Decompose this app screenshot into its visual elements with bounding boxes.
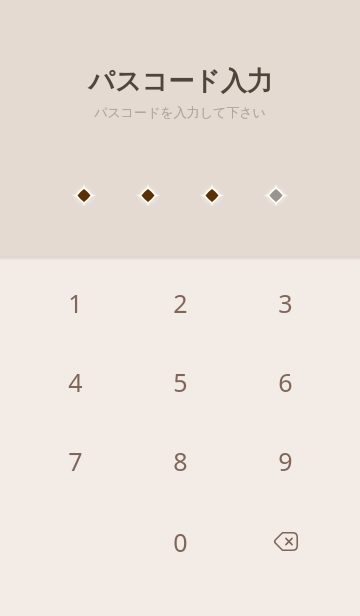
staticText: 2 bbox=[173, 286, 188, 320]
button[interactable]: Delete last digit bbox=[233, 502, 338, 581]
button[interactable]: 9 bbox=[233, 421, 338, 501]
staticText: 7 bbox=[68, 444, 83, 478]
staticText: 9 bbox=[278, 444, 293, 478]
button[interactable]: 3 bbox=[233, 263, 338, 342]
button[interactable]: 4 bbox=[23, 342, 128, 421]
button[interactable]: 5 bbox=[128, 342, 233, 421]
staticText: パスコードを入力して下さい bbox=[94, 104, 266, 120]
staticText: 6 bbox=[278, 365, 293, 399]
staticText: 0 bbox=[173, 525, 188, 559]
button[interactable]: 8 bbox=[128, 421, 233, 501]
other: 3 of 4 digits entered bbox=[0, 0, 360, 256]
staticText: 1 bbox=[68, 286, 83, 320]
button[interactable]: 6 bbox=[233, 342, 338, 421]
staticText: 8 bbox=[173, 444, 188, 478]
staticText: 3 bbox=[278, 286, 293, 320]
staticText: パスコード入力 bbox=[88, 65, 273, 98]
button[interactable]: 2 bbox=[128, 263, 233, 342]
button[interactable]: 0 bbox=[128, 502, 233, 581]
button[interactable]: 1 bbox=[23, 263, 128, 342]
staticText: 5 bbox=[173, 365, 188, 399]
button[interactable]: 7 bbox=[23, 421, 128, 501]
staticText: 4 bbox=[68, 365, 83, 399]
